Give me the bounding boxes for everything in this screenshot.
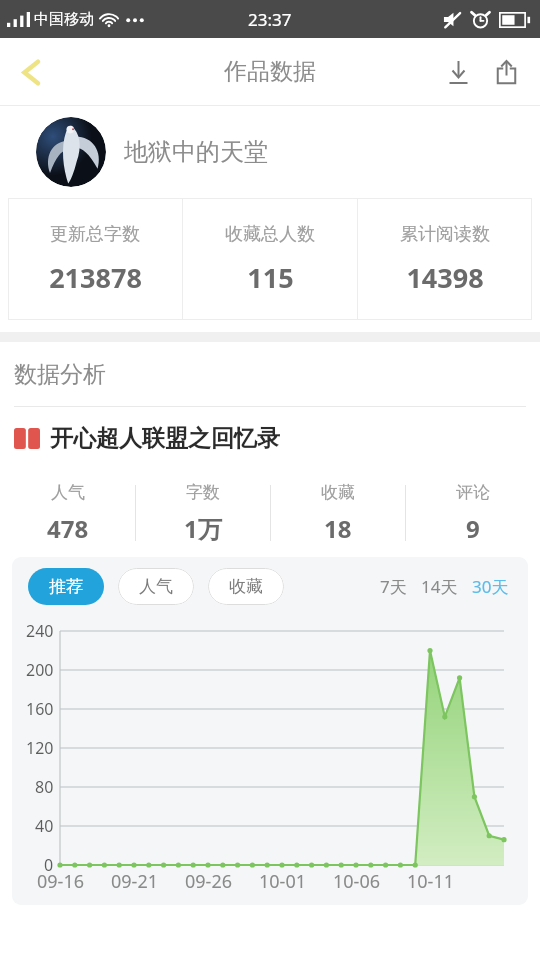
button[interactable]: 累计阅读数 [358,198,532,320]
staticText: 人气 [51,482,85,503]
staticText: 地狱中的天堂 [124,137,268,167]
staticText: 14398 [406,259,484,296]
staticText: 评论 [456,482,490,503]
button[interactable]: Download [434,48,482,96]
button[interactable]: 30天 [469,568,512,605]
staticText: 累计阅读数 [400,223,490,246]
staticText: 14天 [421,575,458,598]
button[interactable]: 地狱中的天堂 [0,106,540,198]
staticText: 收藏 [321,482,355,503]
staticText: 1万 [184,512,222,545]
button[interactable]: 收藏 [208,568,284,605]
staticText: 开心超人联盟之回忆录 [50,424,280,453]
staticText: 0 [44,854,54,876]
staticText: 200 [26,659,54,681]
button[interactable]: 开心超人联盟之回忆录 [0,407,540,469]
staticText: 9 [466,512,480,545]
button[interactable]: 字数 [136,469,270,557]
staticText: 中国移动 [34,10,94,29]
staticText: 40 [35,815,54,837]
staticText: 120 [26,737,54,759]
staticText: 数据分析 [14,360,106,389]
button[interactable]: 收藏 [271,469,405,557]
staticText: 10-11 [407,869,454,894]
staticText: 10-06 [333,869,380,894]
staticText: 240 [26,620,54,642]
button[interactable]: 推荐 [28,568,104,605]
button[interactable]: 人气 [118,568,194,605]
staticText: 160 [26,698,54,720]
staticText: 23:37 [248,8,292,31]
button[interactable]: Share [482,48,530,96]
button[interactable]: 更新总字数 [8,198,182,320]
button[interactable]: 评论 [406,469,540,557]
staticText: 09-21 [111,869,158,894]
staticText: 09-16 [37,869,84,894]
staticText: 更新总字数 [50,223,140,246]
staticText: 10-01 [259,869,306,894]
staticText: 478 [47,512,89,545]
staticText: 作品数据 [224,57,316,86]
staticText: 09-26 [185,869,232,894]
staticText: 30天 [472,575,509,598]
staticText: 人气 [139,576,173,597]
staticText: 7天 [380,575,407,598]
staticText: 80 [35,776,54,798]
staticText: 收藏总人数 [225,223,315,246]
button[interactable]: 14天 [418,568,461,605]
button[interactable]: 收藏总人数 [183,198,357,320]
staticText: 115 [247,259,294,296]
staticText: 字数 [186,482,220,503]
button[interactable]: 7天 [377,568,410,605]
staticText: 收藏 [229,576,263,597]
button[interactable]: 人气 [0,469,135,557]
staticText: 18 [324,512,352,545]
staticText: 213878 [49,259,142,296]
staticText: 推荐 [49,576,83,597]
button[interactable]: Back [4,45,58,99]
